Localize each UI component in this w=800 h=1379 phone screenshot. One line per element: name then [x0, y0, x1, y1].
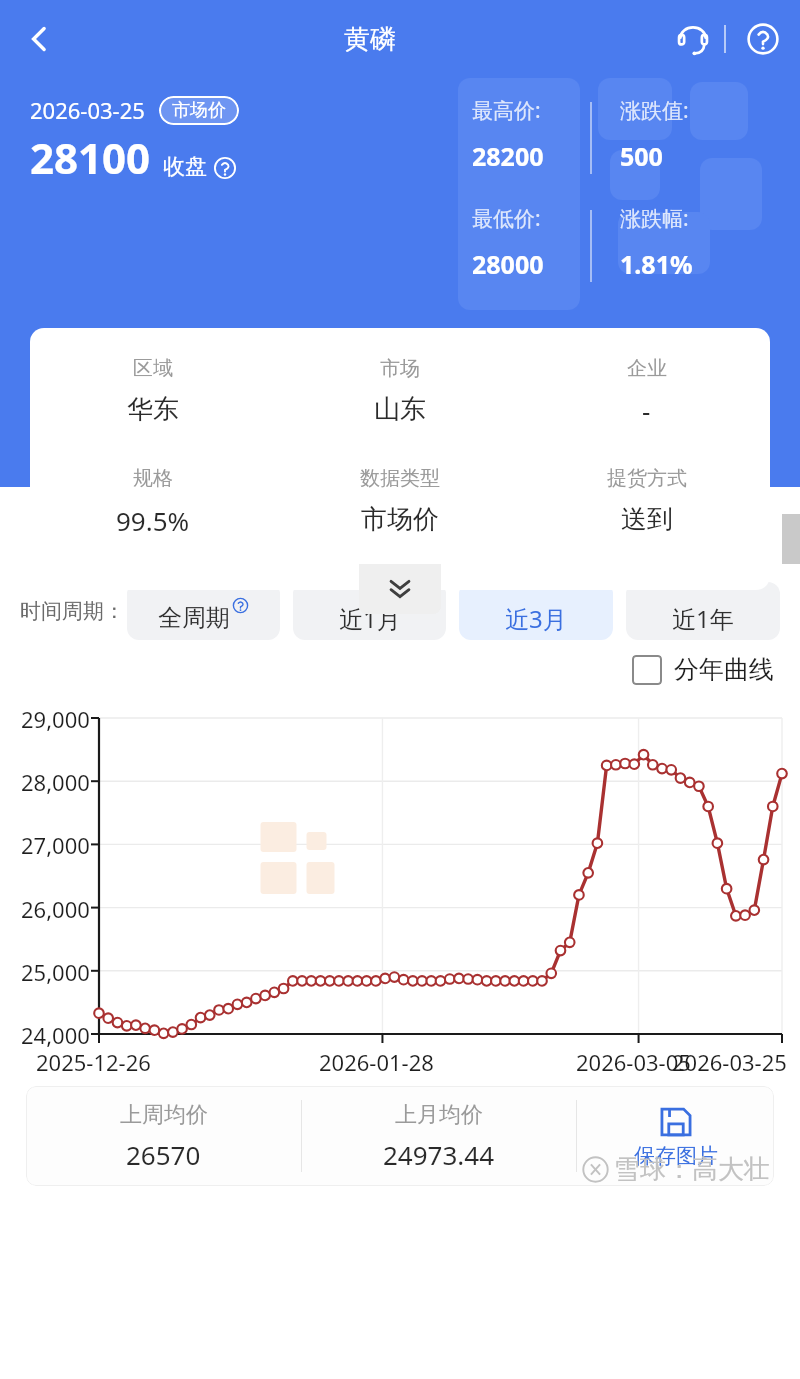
- staticText: 自定义均: [575, 512, 679, 545]
- staticText: 区域: [133, 356, 173, 381]
- button[interactable]: Customer service: [662, 0, 724, 78]
- staticText: 单日价格: [34, 512, 138, 545]
- staticText: 500: [620, 139, 663, 173]
- staticText: 上月均价: [395, 1101, 483, 1129]
- staticText: 收盘: [163, 153, 207, 181]
- button[interactable]: 全周期: [127, 582, 280, 640]
- staticText: 1.81%: [620, 247, 693, 281]
- staticText: 市场价: [172, 99, 226, 122]
- staticText: 近1月: [339, 602, 401, 635]
- staticText: 全周期: [158, 603, 230, 633]
- button[interactable]: 近3月: [459, 582, 613, 640]
- button[interactable]: 单日价格: [34, 512, 138, 559]
- staticText: 2026-01-28: [319, 1047, 434, 1077]
- staticText: 最低价:: [472, 204, 541, 233]
- staticText: 保存图片: [634, 1143, 718, 1169]
- button[interactable]: Expand details: [359, 564, 441, 614]
- staticText: 28100: [30, 129, 151, 186]
- staticText: 2026-03-25: [672, 1047, 787, 1077]
- staticText: 28,000: [21, 767, 90, 797]
- staticText: 时间周期：: [20, 598, 125, 624]
- staticText: 2026-03-05: [576, 1047, 691, 1077]
- staticText: 雪球：高大壮: [614, 1153, 770, 1186]
- staticText: 99.5%: [116, 503, 190, 538]
- staticText: 24973.44: [383, 1137, 495, 1172]
- staticText: 2026-03-25: [30, 95, 145, 125]
- button[interactable]: 近1月: [293, 582, 446, 640]
- staticText: 山东: [374, 393, 426, 426]
- staticText: 市场: [380, 356, 420, 381]
- staticText: 26,000: [21, 894, 90, 924]
- staticText: 送到: [621, 503, 673, 536]
- button[interactable]: 自定义均: [575, 512, 679, 545]
- button[interactable]: Back: [0, 0, 78, 78]
- staticText: 27,000: [21, 830, 90, 860]
- button[interactable]: 市场价: [159, 96, 239, 125]
- staticText: 24,000: [21, 1020, 90, 1050]
- button[interactable]: 近1年: [626, 582, 780, 640]
- staticText: 2025-12-26: [36, 1047, 151, 1077]
- staticText: 近3月: [505, 602, 567, 635]
- staticText: 28000: [472, 247, 544, 281]
- staticText: 29,000: [21, 704, 90, 734]
- staticText: 分年曲线: [674, 654, 774, 685]
- staticText: 28200: [472, 139, 544, 173]
- staticText: 季均价: [369, 512, 447, 545]
- staticText: 25,000: [21, 957, 90, 987]
- button[interactable]: Save image: [577, 1103, 774, 1169]
- staticText: -: [642, 393, 651, 428]
- button[interactable]: 周均价: [163, 512, 241, 545]
- staticText: 涨跌幅:: [620, 204, 689, 233]
- staticText: 26570: [126, 1137, 201, 1172]
- staticText: 涨跌值:: [620, 96, 689, 125]
- button[interactable]: 分年曲线: [632, 654, 774, 685]
- button[interactable]: Help: [726, 0, 800, 78]
- staticText: 华东: [127, 393, 179, 426]
- staticText: 周均价: [163, 512, 241, 545]
- staticText: 企业: [627, 356, 667, 381]
- staticText: 规格: [133, 466, 173, 491]
- staticText: 上周均价: [120, 1101, 208, 1129]
- staticText: 黄磷: [344, 23, 396, 56]
- staticText: 数据类型: [360, 466, 440, 491]
- button[interactable]: 季均价: [369, 512, 447, 545]
- staticText: 最高价:: [472, 96, 541, 125]
- staticText: 近1年: [672, 602, 734, 635]
- staticText: 提货方式: [607, 466, 687, 491]
- staticText: 市场价: [361, 503, 439, 536]
